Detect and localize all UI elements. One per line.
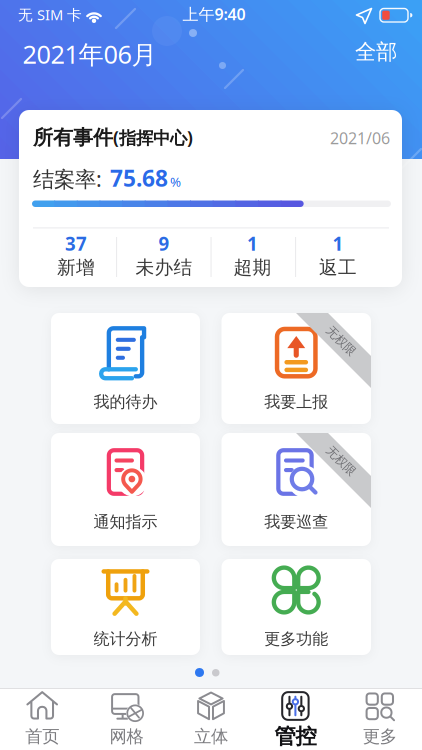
button[interactable]: 统计分析 xyxy=(51,559,200,655)
staticText: 管控 xyxy=(274,723,316,750)
staticText: 我要上报 xyxy=(264,392,328,412)
button[interactable]: 更多功能 xyxy=(221,559,371,655)
staticText: 无权限 xyxy=(323,454,359,468)
staticText: 首页 xyxy=(25,726,59,747)
staticText: 2021/06 xyxy=(330,127,390,148)
staticText: 更多功能 xyxy=(264,629,328,649)
staticText: 无权限 xyxy=(323,334,359,348)
staticText: 未办结 xyxy=(135,256,192,279)
button[interactable]: 通知指示 xyxy=(51,433,200,546)
staticText: 新增 xyxy=(57,256,95,279)
staticText: 无 SIM 卡 xyxy=(18,5,82,24)
staticText: 1 xyxy=(247,231,258,256)
button[interactable]: 我要上报 xyxy=(221,313,371,424)
button[interactable]: 我要巡查 xyxy=(221,433,371,546)
staticText: 返工 xyxy=(319,256,357,279)
staticText: 更多 xyxy=(363,726,397,747)
staticText: 全部 xyxy=(355,39,397,65)
staticText: 上午9:40 xyxy=(182,3,245,25)
staticText: 2021年06月 xyxy=(22,37,156,71)
button[interactable]: 管控 xyxy=(253,688,338,750)
staticText: 37 xyxy=(65,231,87,256)
staticText: 我要巡查 xyxy=(264,512,328,532)
staticText: 超期 xyxy=(233,256,271,279)
button[interactable]: 首页 xyxy=(0,688,84,750)
staticText: 75.68 xyxy=(110,163,168,193)
staticText: 9 xyxy=(158,231,169,256)
staticText: (指挥中心) xyxy=(113,126,193,149)
staticText: 立体 xyxy=(194,726,228,747)
staticText: 所有事件 xyxy=(33,125,113,150)
button[interactable]: 网格 xyxy=(84,688,169,750)
staticText: 统计分析 xyxy=(93,629,157,649)
button[interactable]: 2021年06月 xyxy=(22,37,172,71)
staticText: 1 xyxy=(332,231,343,256)
staticText: 我的待办 xyxy=(93,392,157,412)
staticText: 网格 xyxy=(110,726,144,747)
button[interactable]: 更多 xyxy=(338,688,422,750)
button[interactable]: 我的待办 xyxy=(51,313,200,424)
staticText: % xyxy=(170,173,181,190)
staticText: 通知指示 xyxy=(93,512,157,532)
button[interactable]: 立体 xyxy=(169,688,253,750)
staticText: 结案率: xyxy=(33,165,108,193)
button[interactable]: 全部 xyxy=(355,39,397,65)
